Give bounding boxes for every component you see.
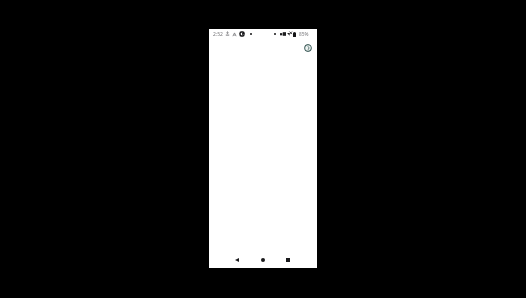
button[interactable]: Home xyxy=(254,251,272,269)
button[interactable]: Back xyxy=(228,251,246,269)
staticText: 2:52 xyxy=(213,31,223,38)
button[interactable]: Recent apps xyxy=(279,251,297,269)
staticText: 85% xyxy=(299,31,309,38)
button[interactable]: Account xyxy=(304,44,312,52)
